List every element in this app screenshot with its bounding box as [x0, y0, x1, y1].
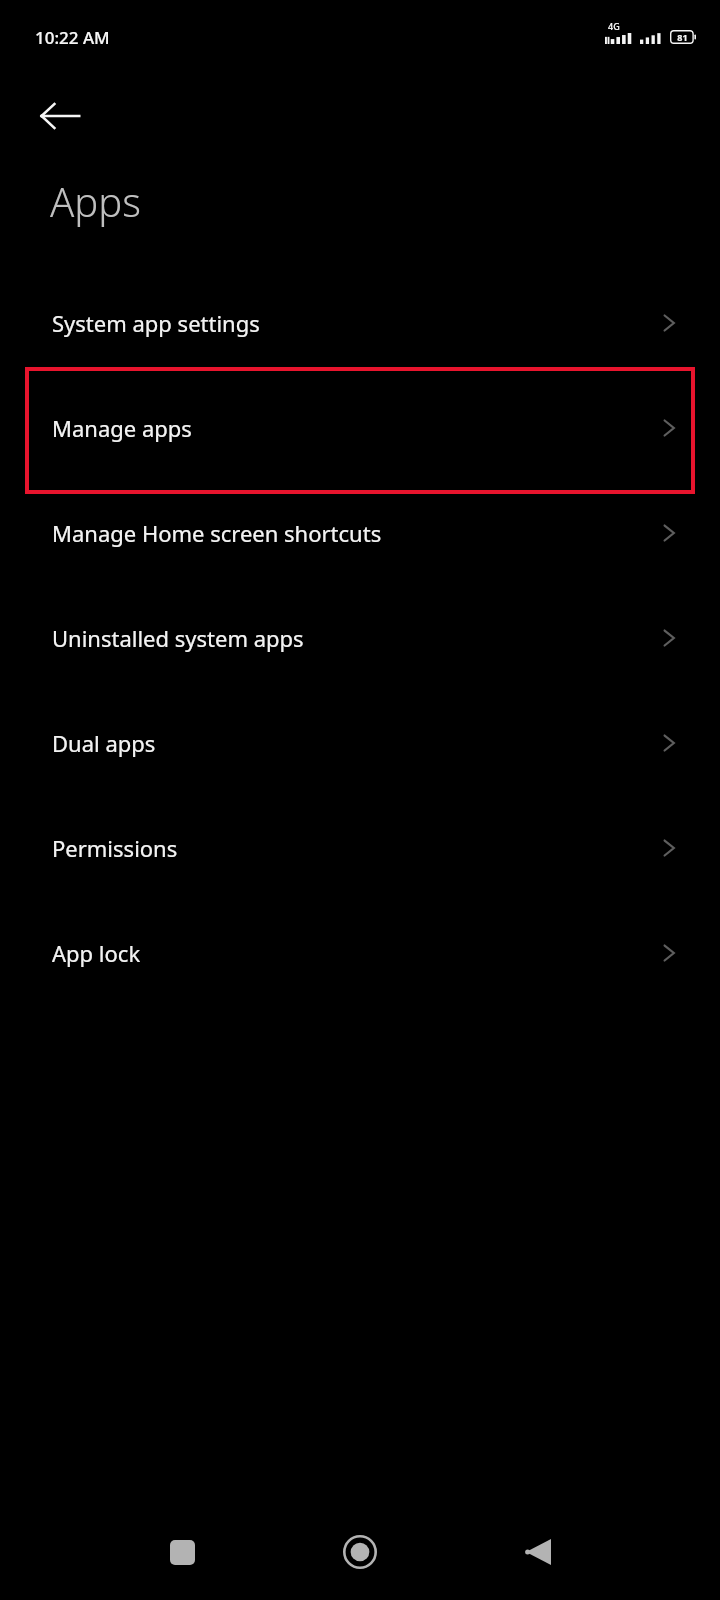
button[interactable]: Home	[326, 1518, 394, 1586]
button[interactable]: Dual apps	[0, 690, 720, 795]
button[interactable]: Back	[32, 88, 88, 144]
button[interactable]: Manage apps	[0, 375, 720, 480]
staticText: 4G	[608, 20, 620, 32]
staticText: Dual apps	[52, 728, 156, 758]
staticText: Manage Home screen shortcuts	[52, 518, 382, 548]
staticText: 81	[677, 31, 688, 43]
button[interactable]: System app settings	[0, 270, 720, 375]
staticText: App lock	[52, 938, 141, 968]
button[interactable]: Recents	[150, 1520, 214, 1584]
staticText: Uninstalled system apps	[52, 623, 304, 653]
button[interactable]: Back	[506, 1520, 570, 1584]
staticText: 10:22 AM	[35, 26, 110, 49]
button[interactable]: Uninstalled system apps	[0, 585, 720, 690]
button[interactable]: App lock	[0, 900, 720, 1005]
button[interactable]: Manage Home screen shortcuts	[0, 480, 720, 585]
staticText: Permissions	[52, 833, 178, 863]
button[interactable]: Permissions	[0, 795, 720, 900]
staticText: System app settings	[52, 308, 260, 338]
staticText: Apps	[50, 174, 141, 228]
staticText: Manage apps	[52, 413, 192, 443]
